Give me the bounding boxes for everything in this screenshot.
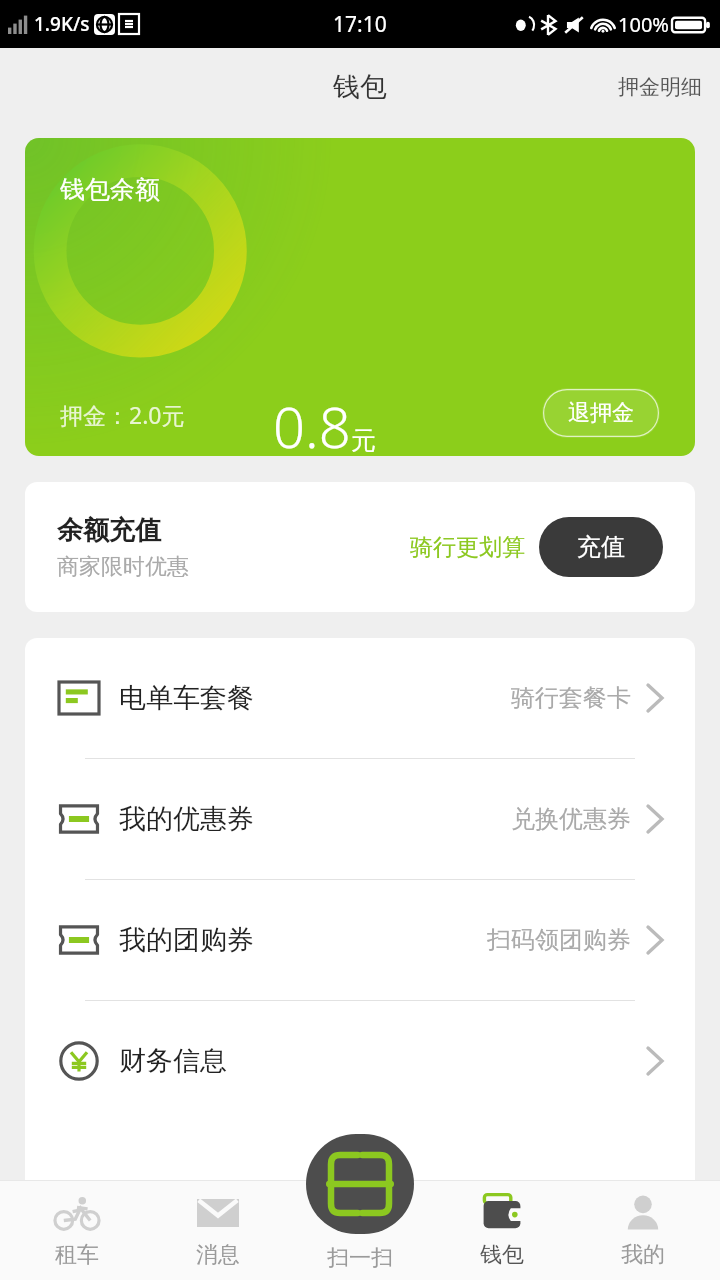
button[interactable]: 我的团购券 — [25, 880, 695, 1000]
staticText: 扫一扫 — [295, 1244, 425, 1272]
staticText: 0.8 — [273, 388, 351, 456]
button[interactable]: 我的优惠券 — [25, 759, 695, 879]
button[interactable]: 钱包余额 — [25, 138, 695, 456]
staticText: 我的优惠券 — [119, 802, 254, 836]
staticText: 退押金 — [568, 399, 634, 427]
staticText: 1.9K/s — [34, 11, 90, 37]
button[interactable]: 押金明细 — [600, 62, 720, 112]
staticText: 钱包 — [333, 70, 387, 104]
button[interactable]: 电单车套餐 — [25, 638, 695, 758]
staticText: 骑行更划算 — [410, 533, 525, 562]
button[interactable]: 扫一扫 — [306, 1134, 414, 1234]
staticText: 我的 — [621, 1241, 665, 1269]
staticText: 元 — [351, 425, 376, 456]
staticText: 租车 — [55, 1241, 99, 1269]
button[interactable]: 消息 — [153, 1180, 283, 1280]
staticText: 电单车套餐 — [119, 681, 254, 715]
staticText: 押金：2.0元 — [60, 399, 185, 430]
staticText: 商家限时优惠 — [57, 553, 189, 581]
staticText: 我的团购券 — [119, 923, 254, 957]
staticText: 财务信息 — [119, 1044, 227, 1078]
button[interactable]: 余额充值 — [25, 482, 695, 612]
staticText: 骑行套餐卡 — [511, 683, 631, 713]
staticText: 钱包余额 — [60, 174, 160, 205]
button[interactable]: 我的 — [578, 1180, 708, 1280]
button[interactable]: 钱包 — [437, 1180, 567, 1280]
button[interactable]: 财务信息 — [25, 1001, 695, 1121]
staticText: 充值 — [577, 532, 625, 562]
staticText: 兑换优惠券 — [511, 804, 631, 834]
staticText: 钱包 — [480, 1241, 524, 1269]
staticText: 消息 — [196, 1241, 240, 1269]
staticText: 扫码领团购券 — [487, 925, 631, 955]
staticText: 余额充值 — [57, 514, 161, 547]
staticText: 100% — [618, 11, 669, 38]
button[interactable]: 退押金 — [542, 388, 660, 438]
button[interactable]: 租车 — [12, 1180, 142, 1280]
button[interactable]: 充值 — [539, 517, 663, 577]
staticText: 17:10 — [333, 10, 387, 39]
staticText: 押金明细 — [618, 74, 702, 100]
